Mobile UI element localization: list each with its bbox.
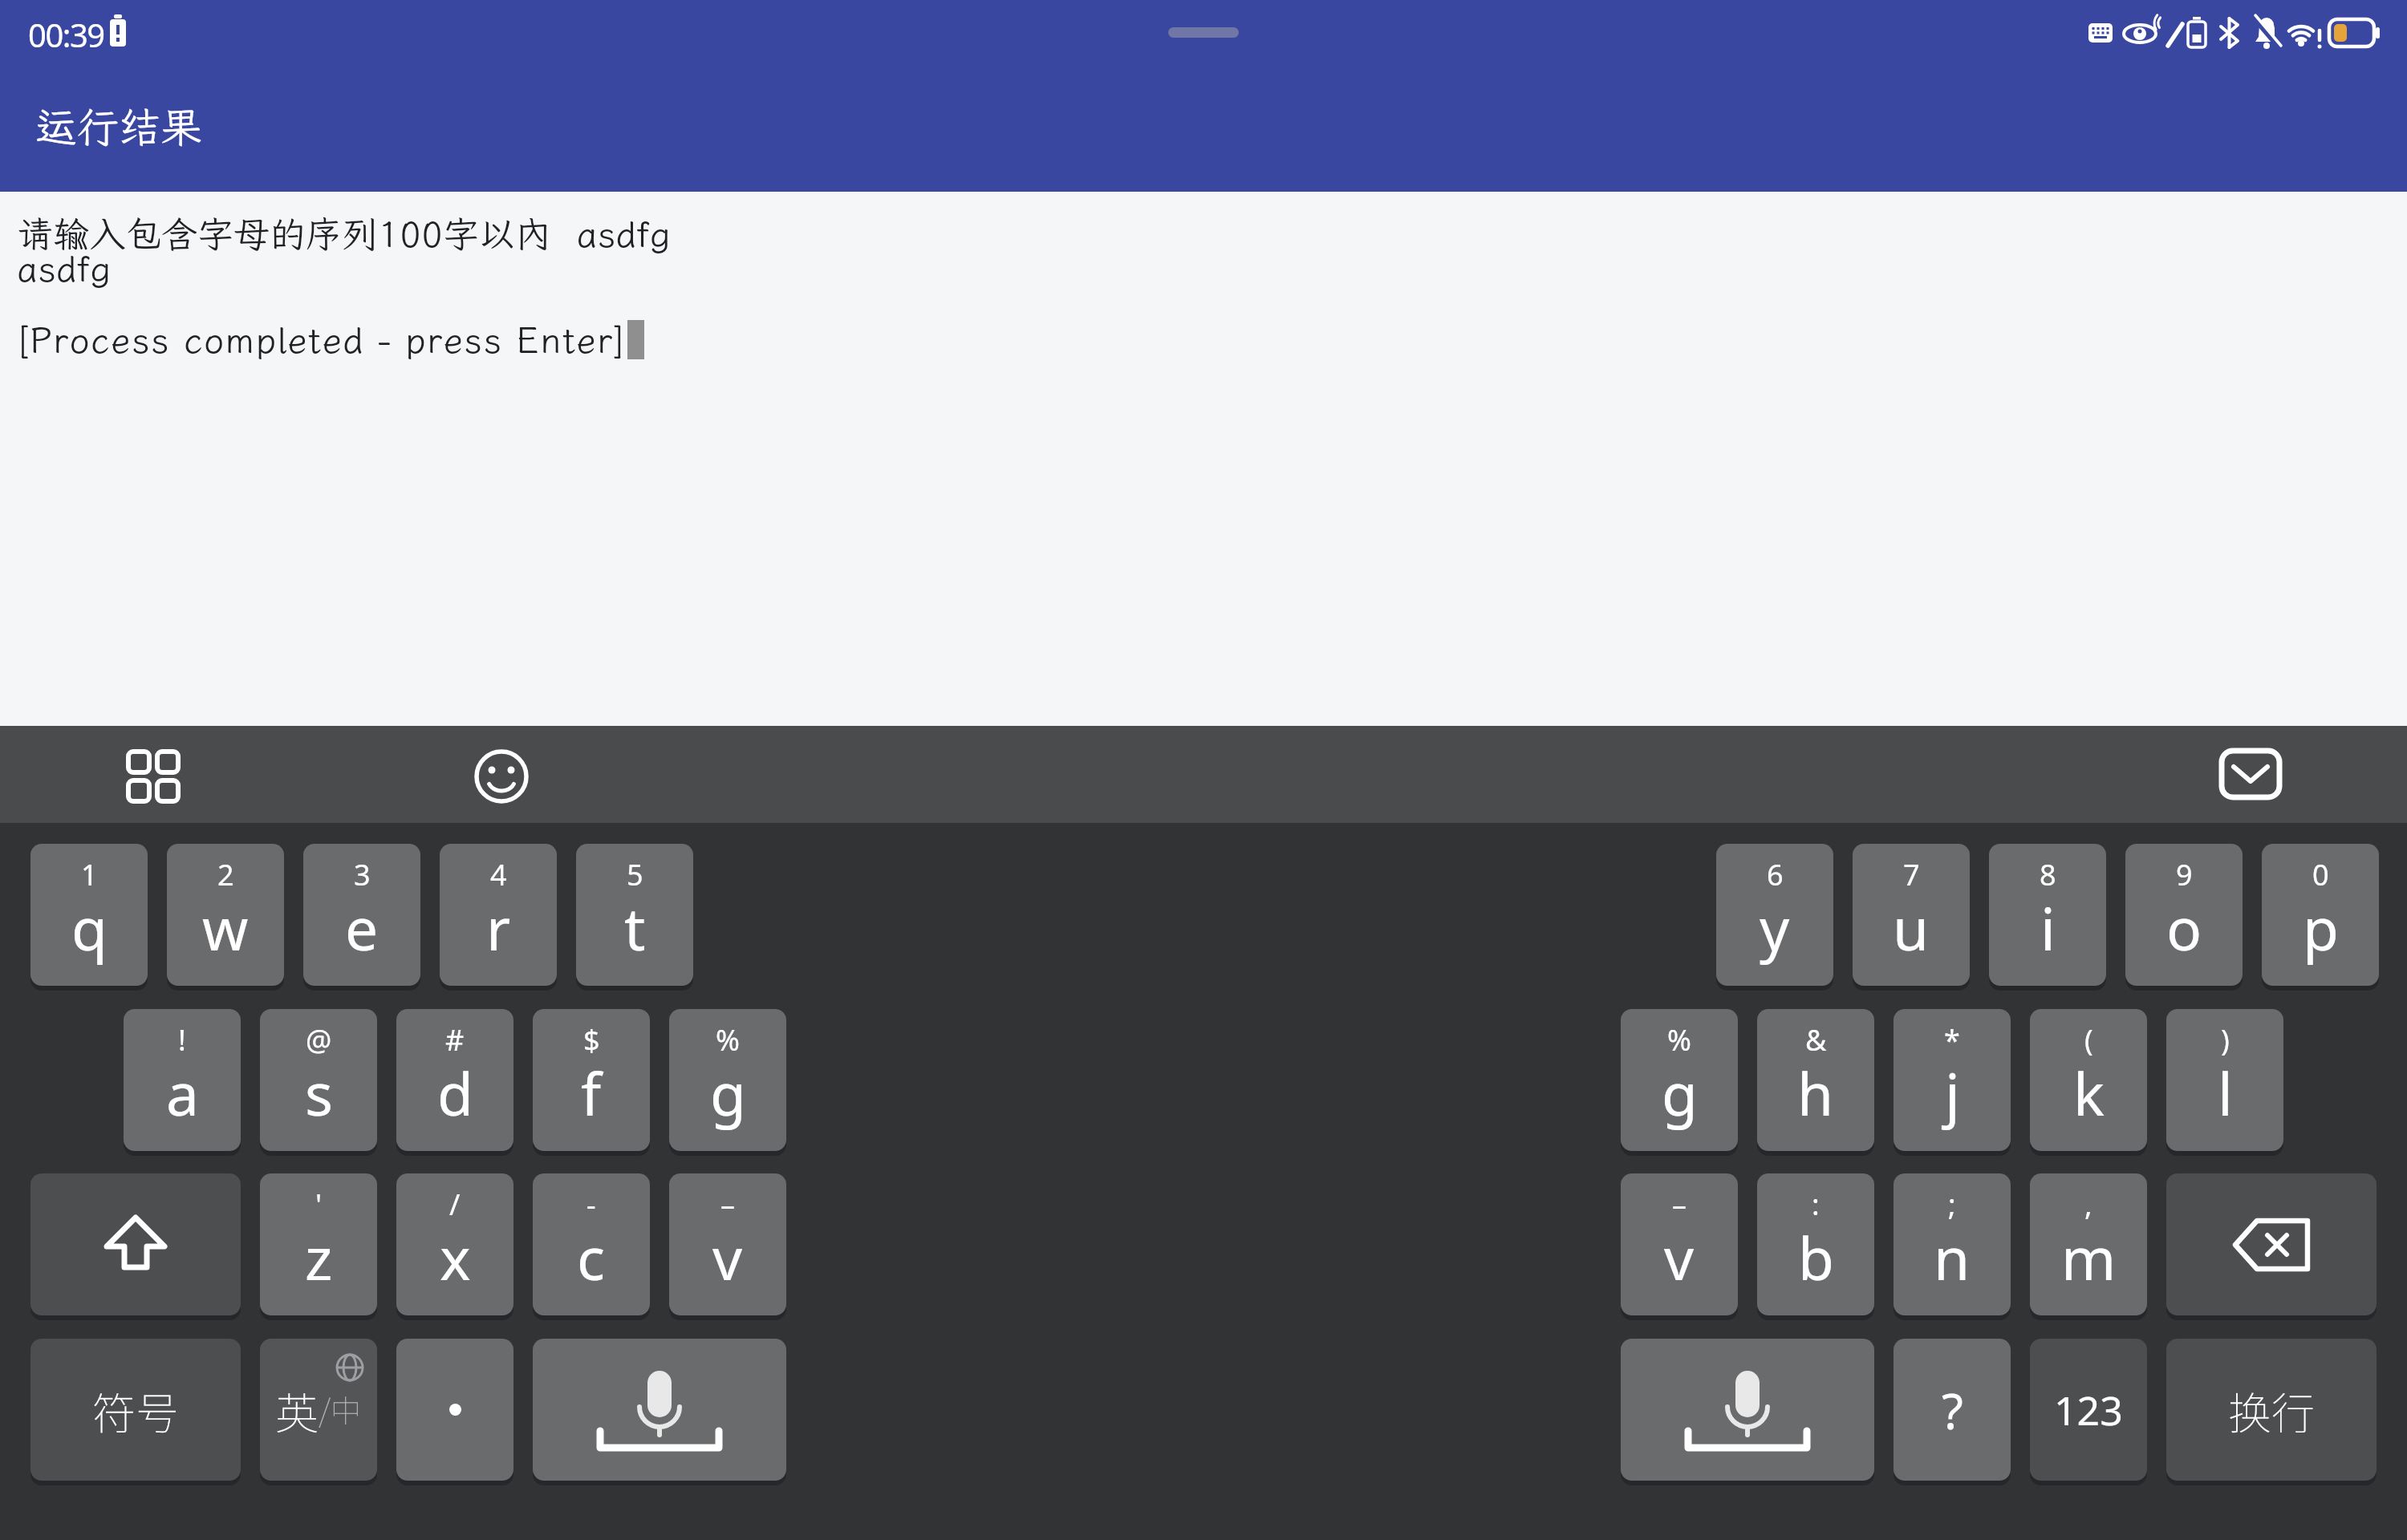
staticText: z <box>305 1218 333 1297</box>
button[interactable]: , <box>2030 1173 2147 1315</box>
staticText: 8 <box>2040 855 2056 894</box>
staticText: g <box>1662 1053 1698 1133</box>
staticText: – <box>1672 1185 1687 1224</box>
button[interactable]: 7 <box>1853 844 1970 986</box>
button[interactable]: 6 <box>1716 844 1833 986</box>
staticText: 9 <box>2176 855 2193 894</box>
staticText: d <box>437 1053 473 1133</box>
staticText: % <box>716 1020 740 1060</box>
button[interactable]: $ <box>533 1009 650 1151</box>
button[interactable]: ; <box>1894 1173 2011 1315</box>
staticText: 1 <box>81 855 98 894</box>
staticText: @ <box>306 1020 332 1060</box>
staticText: i <box>2040 888 2056 967</box>
button[interactable]: ? <box>1894 1339 2011 1481</box>
button[interactable]: 9 <box>2125 844 2243 986</box>
staticText: a <box>166 1053 199 1133</box>
staticText: r <box>486 888 511 967</box>
staticText: 5 <box>627 855 643 894</box>
button[interactable] <box>533 1339 786 1481</box>
button[interactable]: 3 <box>303 844 420 986</box>
staticText: x <box>440 1218 471 1297</box>
staticText: asdfg <box>17 245 112 292</box>
staticText: 0 <box>2312 855 2329 894</box>
staticText: c <box>577 1218 606 1297</box>
staticText: h <box>1797 1053 1834 1133</box>
staticText: / <box>449 1185 461 1224</box>
staticText: n <box>1934 1218 1971 1297</box>
staticText: q <box>71 888 108 967</box>
staticText: o <box>2166 888 2202 967</box>
button[interactable]: # <box>396 1009 513 1151</box>
button[interactable]: 0 <box>2262 844 2379 986</box>
button[interactable]: 123 <box>2030 1339 2147 1481</box>
button[interactable]: ) <box>2166 1009 2283 1151</box>
button[interactable]: 5 <box>576 844 693 986</box>
button[interactable]: ( <box>2030 1009 2147 1151</box>
staticText: 运行结果 <box>35 99 203 153</box>
staticText: 123 <box>2054 1383 2123 1437</box>
button[interactable]: 4 <box>440 844 557 986</box>
staticText: m <box>2061 1218 2117 1297</box>
staticText: % <box>1667 1020 1691 1060</box>
staticText: 符号 <box>92 1379 179 1441</box>
staticText: u <box>1893 888 1930 967</box>
staticText: l <box>2218 1053 2233 1133</box>
staticText: : <box>1812 1185 1820 1224</box>
staticText: f <box>581 1053 602 1133</box>
staticText: 6 <box>1767 855 1784 894</box>
staticText: w <box>202 888 249 967</box>
staticText: v <box>712 1218 743 1297</box>
button[interactable] <box>2218 744 2283 805</box>
staticText: ? <box>1942 1376 1963 1444</box>
staticText: ) <box>2221 1020 2230 1060</box>
staticText: ; <box>1948 1185 1956 1224</box>
button[interactable]: @ <box>260 1009 377 1151</box>
staticText: [Process completed - press Enter] <box>16 316 627 363</box>
button[interactable] <box>396 1339 513 1481</box>
staticText: e <box>345 888 379 967</box>
button[interactable] <box>2166 1173 2377 1315</box>
button[interactable]: 1 <box>30 844 148 986</box>
staticText: * <box>1944 1020 1960 1060</box>
staticText: y <box>1760 888 1790 967</box>
staticText: 00:39 <box>28 13 104 56</box>
staticText: 4 <box>490 855 507 894</box>
button[interactable]: 8 <box>1989 844 2106 986</box>
staticText: g <box>710 1053 746 1133</box>
staticText: - <box>587 1185 596 1224</box>
button[interactable]: - <box>533 1173 650 1315</box>
button[interactable]: & <box>1757 1009 1874 1151</box>
button[interactable]: 2 <box>167 844 284 986</box>
button[interactable]: 换行 <box>2166 1339 2377 1481</box>
button[interactable]: % <box>1621 1009 1738 1151</box>
staticText: v <box>1664 1218 1695 1297</box>
staticText: ' <box>315 1185 323 1224</box>
button[interactable]: / <box>396 1173 513 1315</box>
staticText: /中 <box>319 1387 362 1431</box>
button[interactable] <box>124 746 182 807</box>
staticText: s <box>305 1053 333 1133</box>
staticText: b <box>1798 1218 1834 1297</box>
button[interactable]: 英 <box>260 1339 377 1481</box>
button[interactable]: ' <box>260 1173 377 1315</box>
button[interactable]: 符号 <box>30 1339 241 1481</box>
button[interactable]: % <box>669 1009 786 1151</box>
button[interactable] <box>1621 1339 1874 1481</box>
staticText: # <box>445 1020 465 1060</box>
button[interactable]: ! <box>124 1009 241 1151</box>
staticText: k <box>2073 1053 2105 1133</box>
button[interactable]: – <box>1621 1173 1738 1315</box>
button[interactable] <box>473 746 530 807</box>
button[interactable] <box>30 1173 241 1315</box>
staticText: 请输入包含字母的序列100字以内 asdfg <box>17 210 671 257</box>
button[interactable]: – <box>669 1173 786 1315</box>
staticText: ! <box>178 1020 186 1060</box>
staticText: j <box>1945 1053 1960 1133</box>
staticText: – <box>720 1185 735 1224</box>
staticText: 3 <box>354 855 371 894</box>
staticText: ( <box>2084 1020 2093 1060</box>
staticText: p <box>2303 888 2339 967</box>
button[interactable]: * <box>1894 1009 2011 1151</box>
button[interactable]: : <box>1757 1173 1874 1315</box>
